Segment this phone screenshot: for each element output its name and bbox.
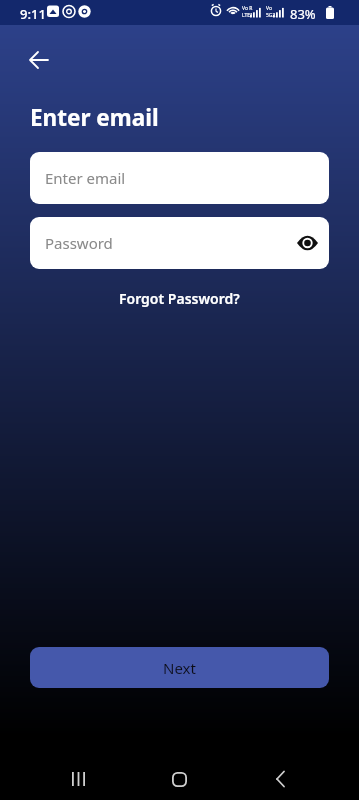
staticText: Vo 5G2 (266, 5, 276, 18)
button[interactable] (155, 756, 203, 800)
staticText: Next (163, 658, 196, 678)
staticText: Enter email (45, 168, 126, 188)
staticText: Enter email (30, 102, 159, 133)
staticText: 9:11 (20, 5, 46, 23)
button[interactable]: Next (30, 647, 329, 688)
button[interactable] (55, 756, 103, 800)
staticText: 83% (290, 5, 316, 23)
button[interactable] (256, 756, 304, 800)
button[interactable]: Forgot Password? (115, 285, 244, 312)
staticText: Vo R LTE1 (242, 5, 253, 18)
button[interactable] (295, 231, 319, 255)
button[interactable]: Password (30, 217, 329, 269)
staticText: Password (45, 233, 113, 253)
button[interactable] (22, 43, 56, 77)
button[interactable]: Enter email (30, 152, 329, 204)
